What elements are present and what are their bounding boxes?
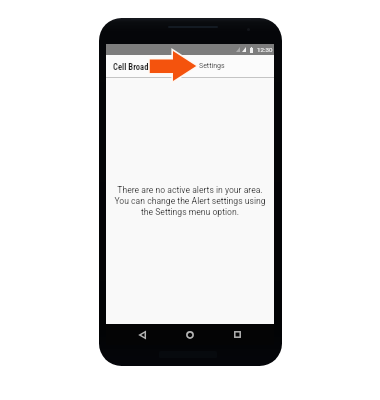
button[interactable]: Home	[173, 324, 206, 345]
staticText: Cell Broadcasts	[113, 62, 167, 72]
button[interactable]: Recent apps	[221, 324, 254, 345]
button[interactable]: Settings	[195, 56, 229, 76]
staticText: 12:30	[257, 46, 273, 53]
button[interactable]: Back	[126, 324, 159, 345]
staticText: Settings	[199, 62, 225, 70]
staticText: There are no active alerts in your area.…	[106, 185, 274, 217]
